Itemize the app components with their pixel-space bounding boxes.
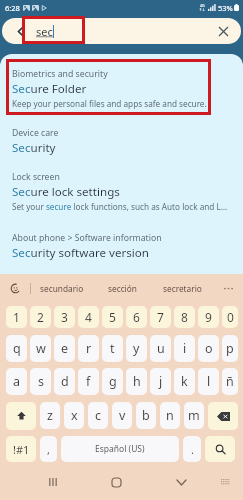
button[interactable]: 7 (150, 306, 171, 328)
button[interactable]: v (112, 402, 132, 429)
staticText: d (61, 373, 69, 390)
button[interactable]: g (102, 368, 123, 395)
button[interactable]: Clear search (216, 24, 230, 38)
staticText: t (110, 340, 115, 357)
staticText: u (157, 340, 165, 357)
staticText: About phone > Software information (12, 232, 162, 244)
staticText: Español (US) (95, 443, 145, 455)
staticText: Lock screen (12, 171, 60, 183)
button[interactable]: 9 (198, 306, 219, 328)
staticText: y (133, 340, 140, 357)
button[interactable]: j (150, 368, 171, 395)
button[interactable]: m (184, 402, 204, 429)
button[interactable]: Change language (0, 274, 30, 302)
button[interactable]: u (150, 335, 171, 362)
button[interactable]: 0 (222, 306, 238, 328)
button[interactable]: 5 (102, 306, 123, 328)
button[interactable]: r (78, 335, 99, 362)
button[interactable] (208, 402, 238, 430)
button[interactable]: q (6, 335, 27, 362)
button[interactable]: a (6, 368, 27, 395)
staticText: s (38, 373, 44, 390)
staticText: 1 (13, 309, 20, 325)
button[interactable]: n (160, 402, 180, 429)
staticText: !#1 (13, 442, 30, 457)
button[interactable]: t (102, 335, 123, 362)
button[interactable]: , (40, 436, 57, 462)
staticText: Device care (12, 127, 59, 139)
staticText: 4G (200, 3, 205, 8)
staticText: f (86, 373, 91, 390)
button[interactable] (6, 402, 36, 430)
button[interactable]: secundario (31, 274, 93, 302)
button[interactable]: c (88, 402, 108, 429)
staticText: 0 (227, 309, 234, 325)
button[interactable]: b (136, 402, 156, 429)
button[interactable]: secretario (151, 274, 213, 302)
staticText: 53% (218, 3, 233, 13)
button[interactable]: i (174, 335, 195, 362)
button[interactable]: w (30, 335, 51, 362)
button[interactable]: 3 (54, 306, 75, 328)
button[interactable] (205, 436, 235, 462)
staticText: 8 (181, 309, 188, 325)
button[interactable]: More suggestions (213, 274, 243, 302)
button[interactable]: 4 (78, 306, 99, 328)
staticText: h (133, 373, 141, 390)
button[interactable]: y (126, 335, 147, 362)
button[interactable]: f (78, 368, 99, 395)
button[interactable]: Home (102, 468, 130, 496)
staticText: x (71, 407, 78, 424)
staticText: secretario (163, 283, 202, 294)
staticText: ñ (226, 373, 234, 390)
button[interactable]: !#1 (6, 436, 36, 462)
button[interactable]: x (64, 402, 84, 429)
staticText: Set your secure lock functions, such as … (12, 201, 228, 212)
button[interactable]: Recent apps (38, 468, 66, 496)
button[interactable]: d (54, 368, 75, 395)
staticText: r (86, 340, 92, 357)
button[interactable]: s (30, 368, 51, 395)
staticText: v (119, 407, 126, 424)
staticText: g (109, 373, 117, 390)
staticText: Security (12, 140, 56, 156)
button[interactable]: o (198, 335, 219, 362)
button[interactable]: p (222, 335, 238, 362)
button[interactable]: e (54, 335, 75, 362)
button[interactable]: . (183, 436, 201, 462)
button[interactable]: Back (167, 468, 195, 496)
staticText: Secure Folder (12, 81, 87, 97)
button[interactable]: 6 (126, 306, 147, 328)
button[interactable]: Español (US) (61, 436, 179, 462)
button[interactable]: h (126, 368, 147, 395)
button[interactable]: l (198, 368, 219, 395)
button[interactable]: k (174, 368, 195, 395)
button[interactable]: Lock screen (0, 157, 243, 213)
staticText: j (159, 373, 163, 390)
staticText: 6:28 (5, 3, 20, 13)
staticText: 2 (37, 309, 44, 325)
staticText: l (207, 373, 211, 390)
staticText: 7 (157, 309, 164, 325)
staticText: secundario (40, 283, 84, 294)
staticText: o (205, 340, 213, 357)
button[interactable]: 2 (30, 306, 51, 328)
staticText: i (183, 340, 187, 357)
button[interactable]: ñ (222, 368, 238, 395)
staticText: a (13, 373, 21, 390)
button[interactable]: About phone > Software information (0, 213, 243, 262)
button[interactable]: Hide keyboard (214, 471, 236, 493)
button[interactable]: 1 (6, 306, 27, 328)
button[interactable]: Back (13, 24, 27, 38)
button[interactable]: 8 (174, 306, 195, 328)
staticText: k (181, 373, 188, 390)
staticText: n (166, 407, 174, 424)
button[interactable]: Biometrics and security (0, 54, 243, 110)
staticText: 5 (109, 309, 116, 325)
staticText: . (191, 442, 194, 457)
staticText: 3 (61, 309, 68, 325)
button[interactable]: sección (93, 274, 151, 302)
button[interactable]: Device care (0, 110, 243, 157)
staticText: p (226, 340, 234, 357)
button[interactable]: z (40, 402, 60, 429)
